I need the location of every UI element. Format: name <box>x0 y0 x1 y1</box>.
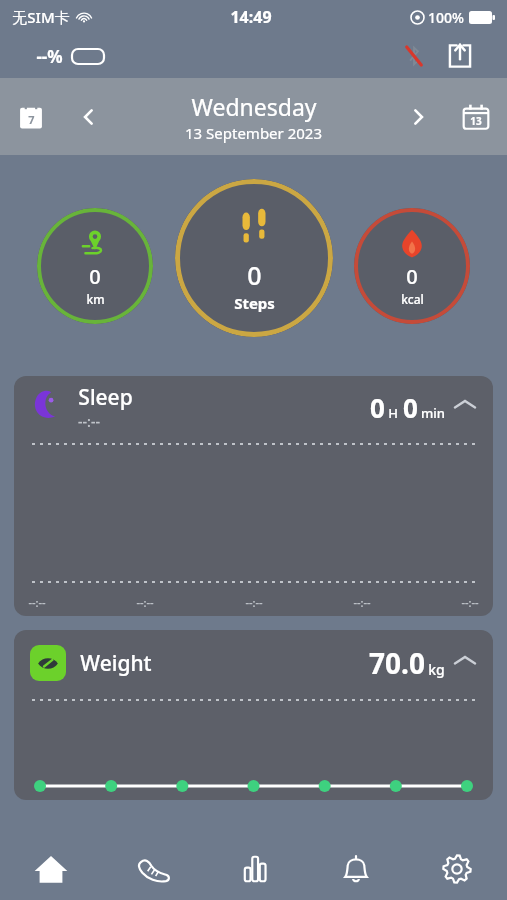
staticText: 13 September 2023 <box>185 123 322 143</box>
button[interactable]: Pick date <box>445 78 507 155</box>
button[interactable]: 0 <box>37 208 153 324</box>
staticText: Weight <box>80 649 152 678</box>
button[interactable]: Home <box>0 838 102 900</box>
staticText: kg <box>428 660 445 679</box>
staticText: 0 <box>247 258 262 292</box>
button[interactable]: Week view <box>0 78 62 155</box>
button[interactable]: Wednesday <box>116 91 391 143</box>
staticText: 14:49 <box>230 6 272 28</box>
staticText: --:-- <box>136 595 154 610</box>
staticText: Sleep <box>78 383 133 412</box>
staticText: Steps <box>234 293 275 313</box>
staticText: kcal <box>401 291 424 307</box>
staticText: Wednesday <box>191 91 317 122</box>
button[interactable]: Bluetooth disconnected <box>399 41 429 71</box>
button[interactable]: Sleep <box>14 376 493 616</box>
staticText: km <box>86 291 105 307</box>
staticText: 7 <box>28 112 35 127</box>
button[interactable]: Share <box>443 39 477 73</box>
staticText: 13 <box>470 114 482 128</box>
button[interactable]: Activity <box>102 838 204 900</box>
staticText: 无SIM卡 <box>12 7 70 27</box>
button[interactable]: 0 <box>175 179 333 337</box>
staticText: --:-- <box>353 595 371 610</box>
button[interactable]: Weight <box>14 630 493 800</box>
staticText: --:-- <box>28 595 46 610</box>
button[interactable]: Previous day <box>62 78 116 155</box>
staticText: --:-- <box>78 412 100 431</box>
staticText: --% <box>36 45 63 68</box>
button[interactable]: Next day <box>391 78 445 155</box>
staticText: 0 <box>89 263 101 290</box>
staticText: min <box>421 404 445 422</box>
button[interactable]: Settings <box>406 838 507 900</box>
button[interactable]: Alarms <box>305 838 406 900</box>
staticText: 0 <box>403 390 418 425</box>
staticText: --:-- <box>461 595 479 610</box>
staticText: 0 <box>406 263 418 290</box>
staticText: 70.0 <box>369 644 425 682</box>
staticText: 0 <box>370 390 385 425</box>
button[interactable]: 0 <box>354 208 470 324</box>
button[interactable]: Statistics <box>204 838 305 900</box>
staticText: --:-- <box>245 595 263 610</box>
staticText: H <box>388 404 398 422</box>
staticText: 100% <box>428 8 464 27</box>
